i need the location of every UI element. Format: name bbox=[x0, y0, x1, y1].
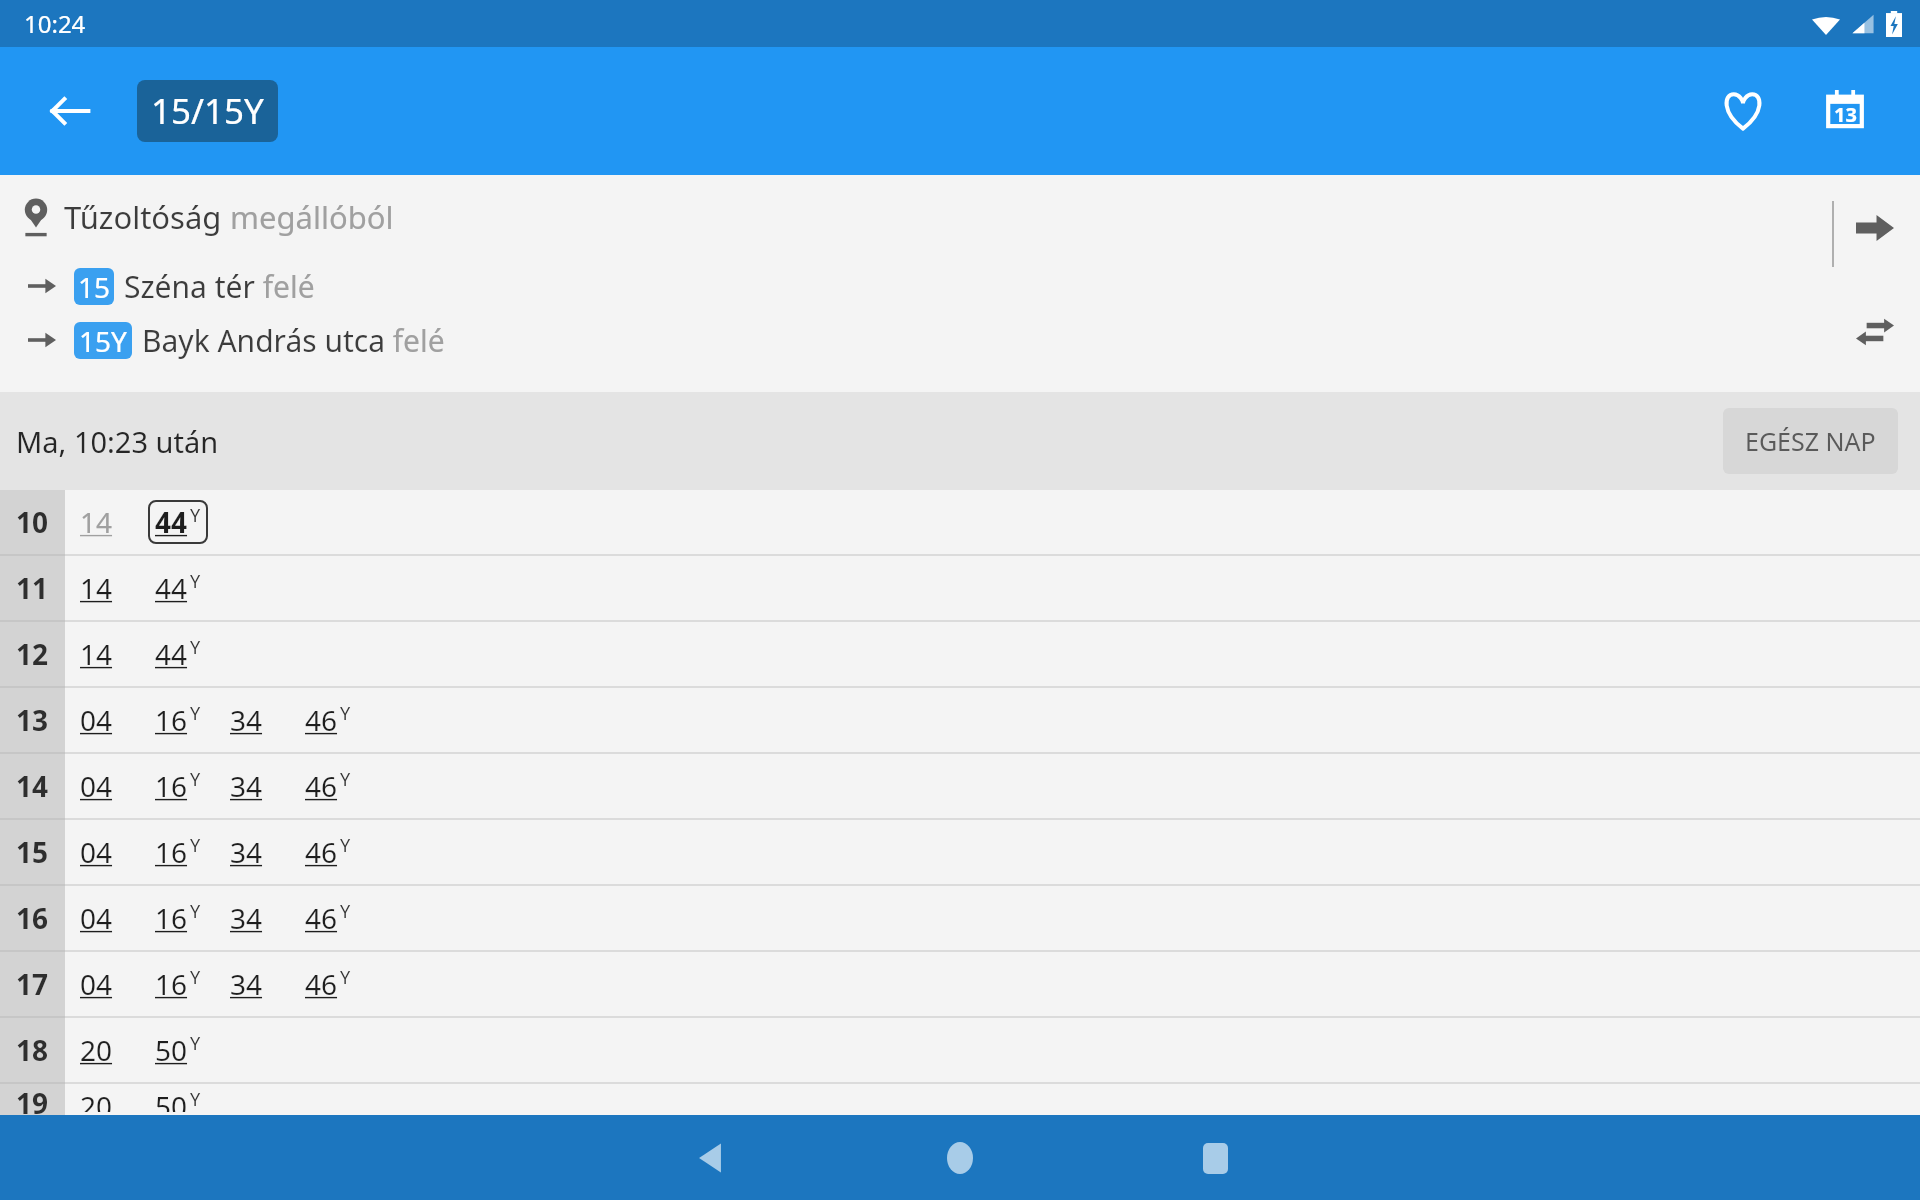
staticText: Y bbox=[340, 767, 351, 792]
staticText: 04 bbox=[80, 899, 113, 937]
button[interactable]: 34 bbox=[223, 962, 270, 1006]
button[interactable]: 04 bbox=[73, 830, 120, 874]
button[interactable]: 44 bbox=[148, 500, 208, 544]
staticText: 04 bbox=[80, 833, 113, 871]
staticText: 13 bbox=[16, 701, 49, 739]
staticText: felé bbox=[385, 320, 445, 361]
staticText: 15 bbox=[16, 833, 49, 871]
button[interactable]: EGÉSZ NAP bbox=[1723, 408, 1898, 474]
button[interactable]: 46 bbox=[298, 698, 358, 742]
staticText: 34 bbox=[230, 899, 263, 937]
staticText: 46 bbox=[305, 899, 338, 937]
button[interactable]: 34 bbox=[223, 698, 270, 742]
button[interactable]: 16 bbox=[148, 830, 208, 874]
staticText: 46 bbox=[305, 965, 338, 1003]
staticText: 16 bbox=[155, 701, 188, 739]
staticText: 11 bbox=[16, 569, 49, 607]
button[interactable]: 14 bbox=[73, 632, 120, 676]
button[interactable]: Go to stop bbox=[1848, 201, 1902, 255]
button[interactable]: Back bbox=[673, 1121, 747, 1195]
button[interactable]: 16 bbox=[148, 962, 208, 1006]
staticText: Y bbox=[190, 1031, 201, 1056]
button[interactable]: 04 bbox=[73, 764, 120, 808]
staticText: 20 bbox=[80, 1031, 113, 1069]
staticText: 46 bbox=[305, 701, 338, 739]
staticText: 16 bbox=[155, 767, 188, 805]
button[interactable]: 14 bbox=[73, 500, 120, 544]
staticText: Y bbox=[190, 569, 201, 594]
button[interactable]: 04 bbox=[73, 896, 120, 940]
button[interactable]: 15/15Y bbox=[137, 80, 278, 142]
staticText: 13 bbox=[1834, 101, 1857, 128]
staticText: 14 bbox=[80, 635, 113, 673]
staticText: 04 bbox=[80, 965, 113, 1003]
staticText: 15 bbox=[78, 268, 111, 305]
staticText: 34 bbox=[230, 965, 263, 1003]
button[interactable]: Home bbox=[923, 1121, 997, 1195]
staticText: Y bbox=[190, 965, 201, 990]
button[interactable]: Calendar bbox=[1816, 82, 1874, 140]
staticText: Y bbox=[190, 1087, 201, 1112]
button[interactable]: Swap direction bbox=[1848, 305, 1902, 359]
button[interactable]: 04 bbox=[73, 962, 120, 1006]
staticText: 16 bbox=[155, 965, 188, 1003]
staticText: 15/15Y bbox=[151, 87, 264, 135]
staticText: 44 bbox=[155, 503, 188, 541]
staticText: 16 bbox=[155, 833, 188, 871]
button[interactable]: 46 bbox=[298, 764, 358, 808]
button[interactable]: 46 bbox=[298, 962, 358, 1006]
button[interactable]: 50 bbox=[148, 1084, 208, 1115]
button[interactable]: 34 bbox=[223, 830, 270, 874]
staticText: 16 bbox=[155, 899, 188, 937]
button[interactable]: 46 bbox=[298, 896, 358, 940]
staticText: 18 bbox=[16, 1031, 49, 1069]
staticText: Ma, 10:23 után bbox=[16, 422, 219, 461]
staticText: 16 bbox=[16, 899, 49, 937]
button[interactable]: Recent apps bbox=[1178, 1121, 1252, 1195]
button[interactable]: 34 bbox=[223, 896, 270, 940]
staticText: 34 bbox=[230, 767, 263, 805]
button[interactable]: 50 bbox=[148, 1028, 208, 1072]
staticText: Y bbox=[190, 635, 201, 660]
staticText: 04 bbox=[80, 767, 113, 805]
button[interactable]: 15 bbox=[0, 259, 1920, 313]
button[interactable]: 20 bbox=[73, 1084, 120, 1115]
staticText: 46 bbox=[305, 767, 338, 805]
button[interactable]: 44 bbox=[148, 632, 208, 676]
staticText: Tűzoltóság bbox=[64, 196, 222, 238]
staticText: 14 bbox=[80, 503, 113, 541]
staticText: 50 bbox=[155, 1087, 188, 1112]
staticText: felé bbox=[255, 266, 315, 307]
staticText: Y bbox=[190, 767, 201, 792]
button[interactable]: 16 bbox=[148, 698, 208, 742]
staticText: EGÉSZ NAP bbox=[1745, 424, 1876, 458]
button[interactable]: Tűzoltóság bbox=[0, 175, 1920, 259]
button[interactable]: 16 bbox=[148, 896, 208, 940]
staticText: Széna tér bbox=[124, 266, 255, 307]
staticText: 34 bbox=[230, 701, 263, 739]
staticText: Y bbox=[190, 701, 201, 726]
staticText: 34 bbox=[230, 833, 263, 871]
staticText: 14 bbox=[16, 767, 49, 805]
button[interactable]: Back bbox=[42, 83, 98, 139]
button[interactable]: 14 bbox=[73, 566, 120, 610]
staticText: 15Y bbox=[79, 322, 127, 359]
button[interactable]: Favourite bbox=[1714, 82, 1772, 140]
staticText: 20 bbox=[80, 1087, 113, 1112]
staticText: 46 bbox=[305, 833, 338, 871]
button[interactable]: 44 bbox=[148, 566, 208, 610]
staticText: Y bbox=[340, 701, 351, 726]
staticText: 04 bbox=[80, 701, 113, 739]
staticText: Y bbox=[190, 899, 201, 924]
button[interactable]: 15Y bbox=[0, 313, 1920, 367]
button[interactable]: 46 bbox=[298, 830, 358, 874]
staticText: 10:24 bbox=[24, 7, 86, 40]
staticText: Y bbox=[190, 503, 201, 528]
button[interactable]: 34 bbox=[223, 764, 270, 808]
staticText: 44 bbox=[155, 635, 188, 673]
button[interactable]: 20 bbox=[73, 1028, 120, 1072]
staticText: Bayk András utca bbox=[142, 320, 385, 361]
button[interactable]: 16 bbox=[148, 764, 208, 808]
staticText: 50 bbox=[155, 1031, 188, 1069]
button[interactable]: 04 bbox=[73, 698, 120, 742]
